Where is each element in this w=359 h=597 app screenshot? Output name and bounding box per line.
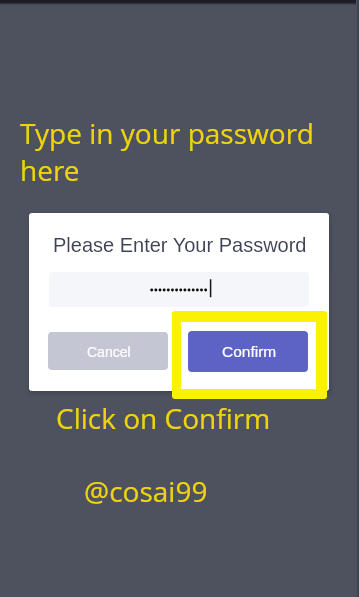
- button[interactable]: Confirm: [188, 331, 308, 372]
- staticText: @cosai99: [84, 472, 208, 510]
- button[interactable]: [49, 272, 309, 307]
- staticText: here: [20, 151, 80, 189]
- staticText: Type in your password: [20, 114, 314, 152]
- button[interactable]: Cancel: [48, 332, 168, 370]
- staticText: Click on Confirm: [56, 399, 271, 437]
- staticText: Please Enter Your Password: [53, 234, 307, 256]
- staticText: Cancel: [87, 344, 131, 360]
- staticText: Confirm: [222, 343, 277, 360]
